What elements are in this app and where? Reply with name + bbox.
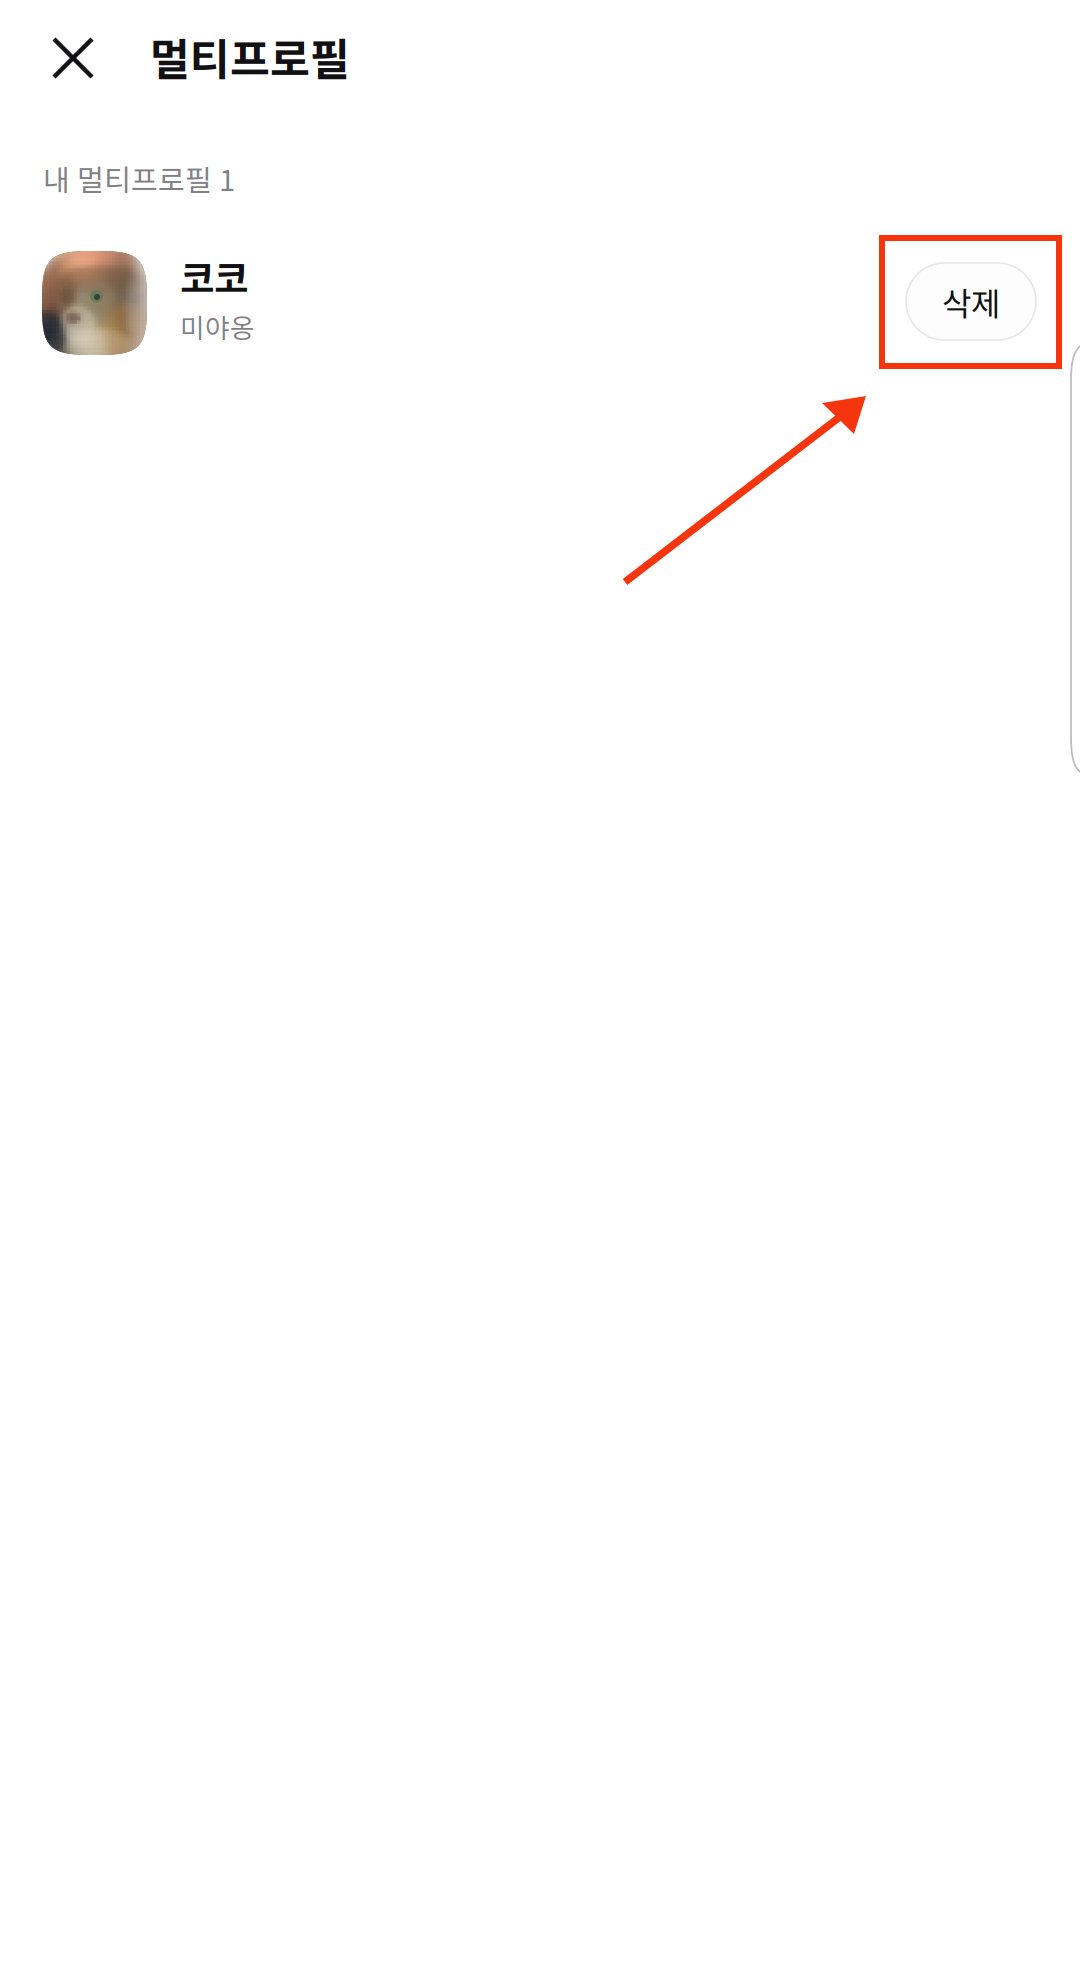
button[interactable]: 삭제 [906,263,1036,340]
staticText: 미야옹 [180,307,255,346]
staticText: 삭제 [942,278,1000,325]
staticText: 내 멀티프로필 1 [43,157,235,199]
staticText: 멀티프로필 [150,25,350,88]
button[interactable]: Close [43,28,99,84]
staticText: 코코 [180,249,248,303]
button[interactable]: 코코 [42,251,862,356]
